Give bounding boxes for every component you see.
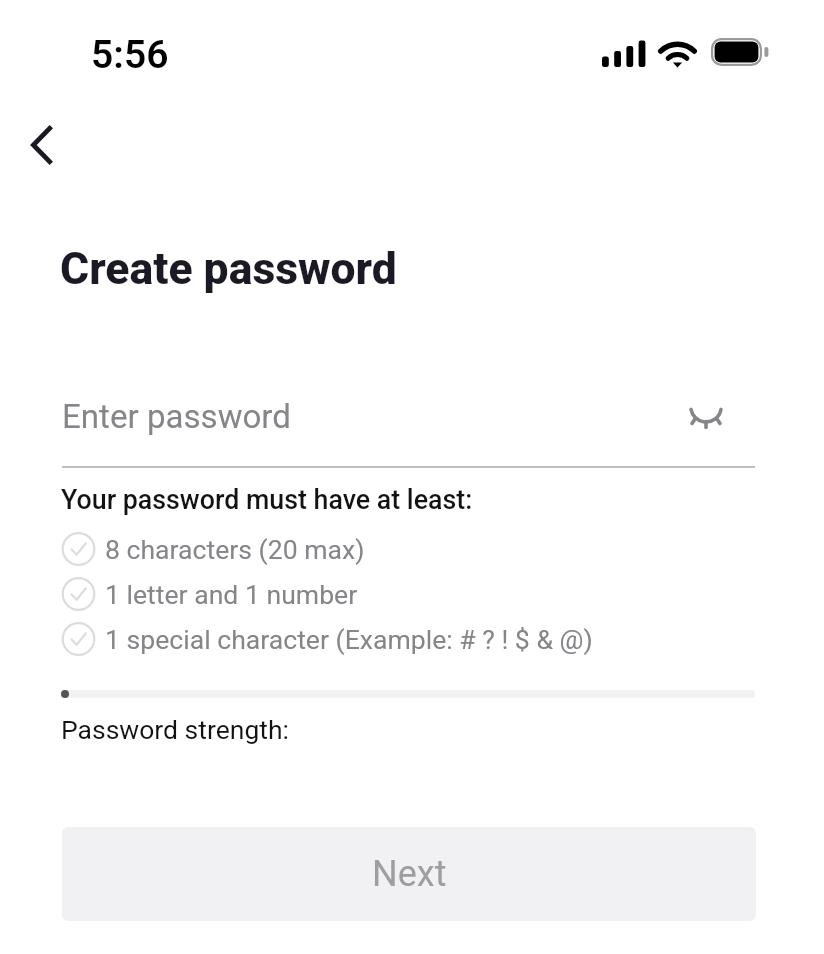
staticText: Create password [60,243,397,295]
staticText: 5:56 [91,32,169,78]
staticText: 1 letter and 1 number [105,579,358,610]
staticText: Your password must have at least: [61,484,473,515]
staticText: Next [372,853,447,895]
button[interactable]: Show password [676,388,736,440]
staticText: Password strength: [61,714,289,745]
staticText: Enter password [62,397,291,436]
button[interactable]: Back [6,110,78,182]
staticText: 8 characters (20 max) [105,534,365,565]
button[interactable]: Next [62,827,756,921]
staticText: 1 special character (Example: # ? ! $ & … [105,624,593,655]
